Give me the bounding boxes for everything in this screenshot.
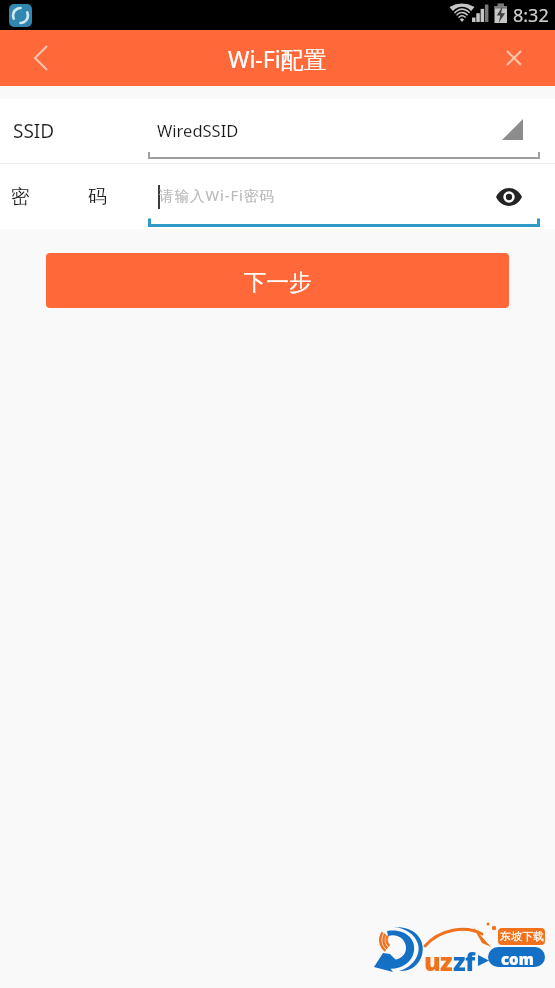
staticText: 码 (88, 185, 107, 209)
staticText: WiredSSID (157, 119, 239, 141)
staticText: uz (424, 944, 452, 978)
staticText: Wi-Fi配置 (228, 43, 327, 74)
button[interactable]: SSID (0, 99, 555, 163)
staticText: com (501, 949, 534, 969)
staticText: SSID (13, 118, 55, 144)
button[interactable]: Signal strength (492, 109, 532, 149)
staticText: 密 (11, 185, 30, 209)
staticText: 8:32 (513, 3, 549, 28)
button[interactable]: Close (486, 30, 542, 86)
button[interactable]: Show password (489, 177, 529, 217)
staticText: 东坡下载 (500, 929, 544, 943)
staticText: zf (453, 944, 475, 978)
staticText: 请输入Wi-Fi密码 (159, 185, 275, 205)
button[interactable]: 密 (0, 164, 555, 229)
button[interactable]: 下一步 (46, 253, 509, 308)
button[interactable]: Back (13, 30, 69, 86)
staticText: 下一步 (244, 268, 312, 296)
